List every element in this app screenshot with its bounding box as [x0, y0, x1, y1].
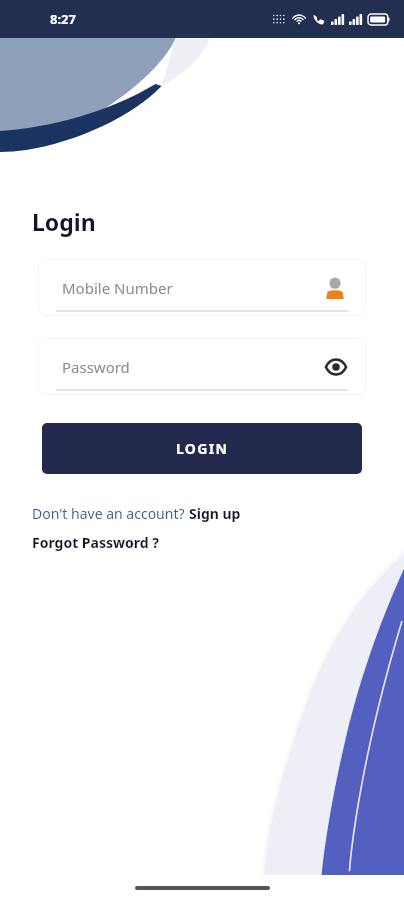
button[interactable]: User	[322, 275, 348, 301]
button[interactable]: Mobile Number field	[38, 259, 366, 316]
staticText: Forgot Password ?	[32, 533, 159, 552]
button[interactable]: Don't have an account?	[32, 504, 241, 523]
staticText: Password	[62, 357, 324, 377]
button[interactable]: Show password	[324, 355, 348, 379]
staticText: LOGIN	[176, 439, 229, 458]
staticText: Sign up	[189, 504, 241, 523]
staticText: 8:27	[50, 10, 76, 28]
button[interactable]: Password field	[38, 338, 366, 395]
staticText: Login	[32, 206, 96, 237]
button[interactable]: Forgot Password ?	[32, 533, 159, 552]
staticText: Don't have an account?	[32, 504, 189, 523]
button[interactable]: LOGIN	[42, 423, 362, 474]
staticText: Mobile Number	[62, 278, 322, 298]
